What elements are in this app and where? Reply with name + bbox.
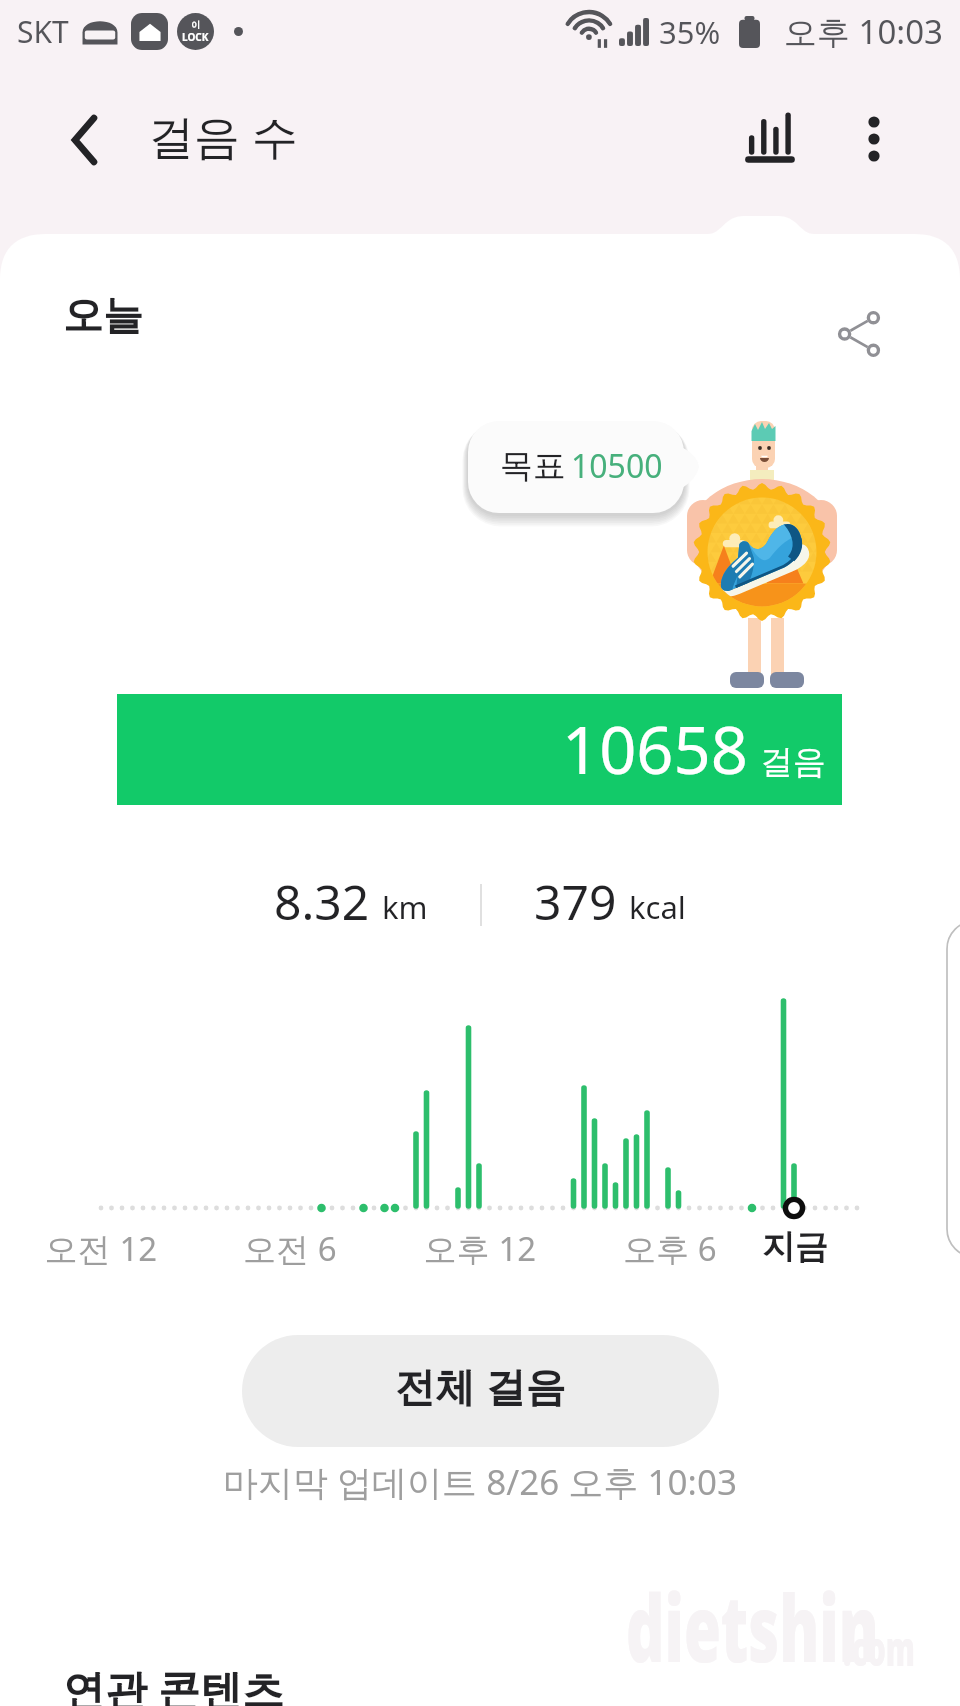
staticText: 오후 10:03 <box>784 9 943 54</box>
staticText: 이 <box>191 19 200 30</box>
staticText: km <box>382 886 428 928</box>
staticText: 오후 6 <box>560 1226 780 1271</box>
staticText: 걸음 <box>760 741 826 783</box>
staticText: 마지막 업데이트 8/26 오후 10:03 <box>223 1458 737 1506</box>
staticText: 지금 <box>685 1226 905 1268</box>
staticText: 35% <box>659 11 721 53</box>
button[interactable]: Back <box>43 98 127 182</box>
staticText: 오전 6 <box>180 1226 400 1271</box>
staticText: SKT <box>17 11 69 52</box>
staticText: .com <box>843 1616 915 1680</box>
staticText: 오후 12 <box>370 1226 590 1271</box>
staticText: 10500 <box>571 444 663 488</box>
staticText: kcal <box>629 886 686 928</box>
staticText: 오전 12 <box>0 1226 211 1271</box>
button[interactable]: History chart <box>728 96 812 180</box>
staticText: 목표 <box>500 445 566 487</box>
staticText: 오늘 <box>63 290 143 340</box>
staticText: 전체 걸음 <box>395 1358 566 1413</box>
staticText: 10658 <box>562 705 748 794</box>
button[interactable]: Share <box>813 288 905 380</box>
button[interactable]: More options <box>832 97 916 181</box>
staticText: 연관 콘텐츠 <box>63 1660 284 1706</box>
staticText: 8.32 <box>274 869 370 934</box>
staticText: 걸음 수 <box>148 104 298 167</box>
staticText: LOCK <box>182 30 209 44</box>
button[interactable]: 전체 걸음 <box>242 1335 719 1447</box>
staticText: 379 <box>534 869 617 934</box>
staticText: dietshin <box>626 1564 879 1689</box>
button[interactable]: 10658 <box>117 694 842 805</box>
